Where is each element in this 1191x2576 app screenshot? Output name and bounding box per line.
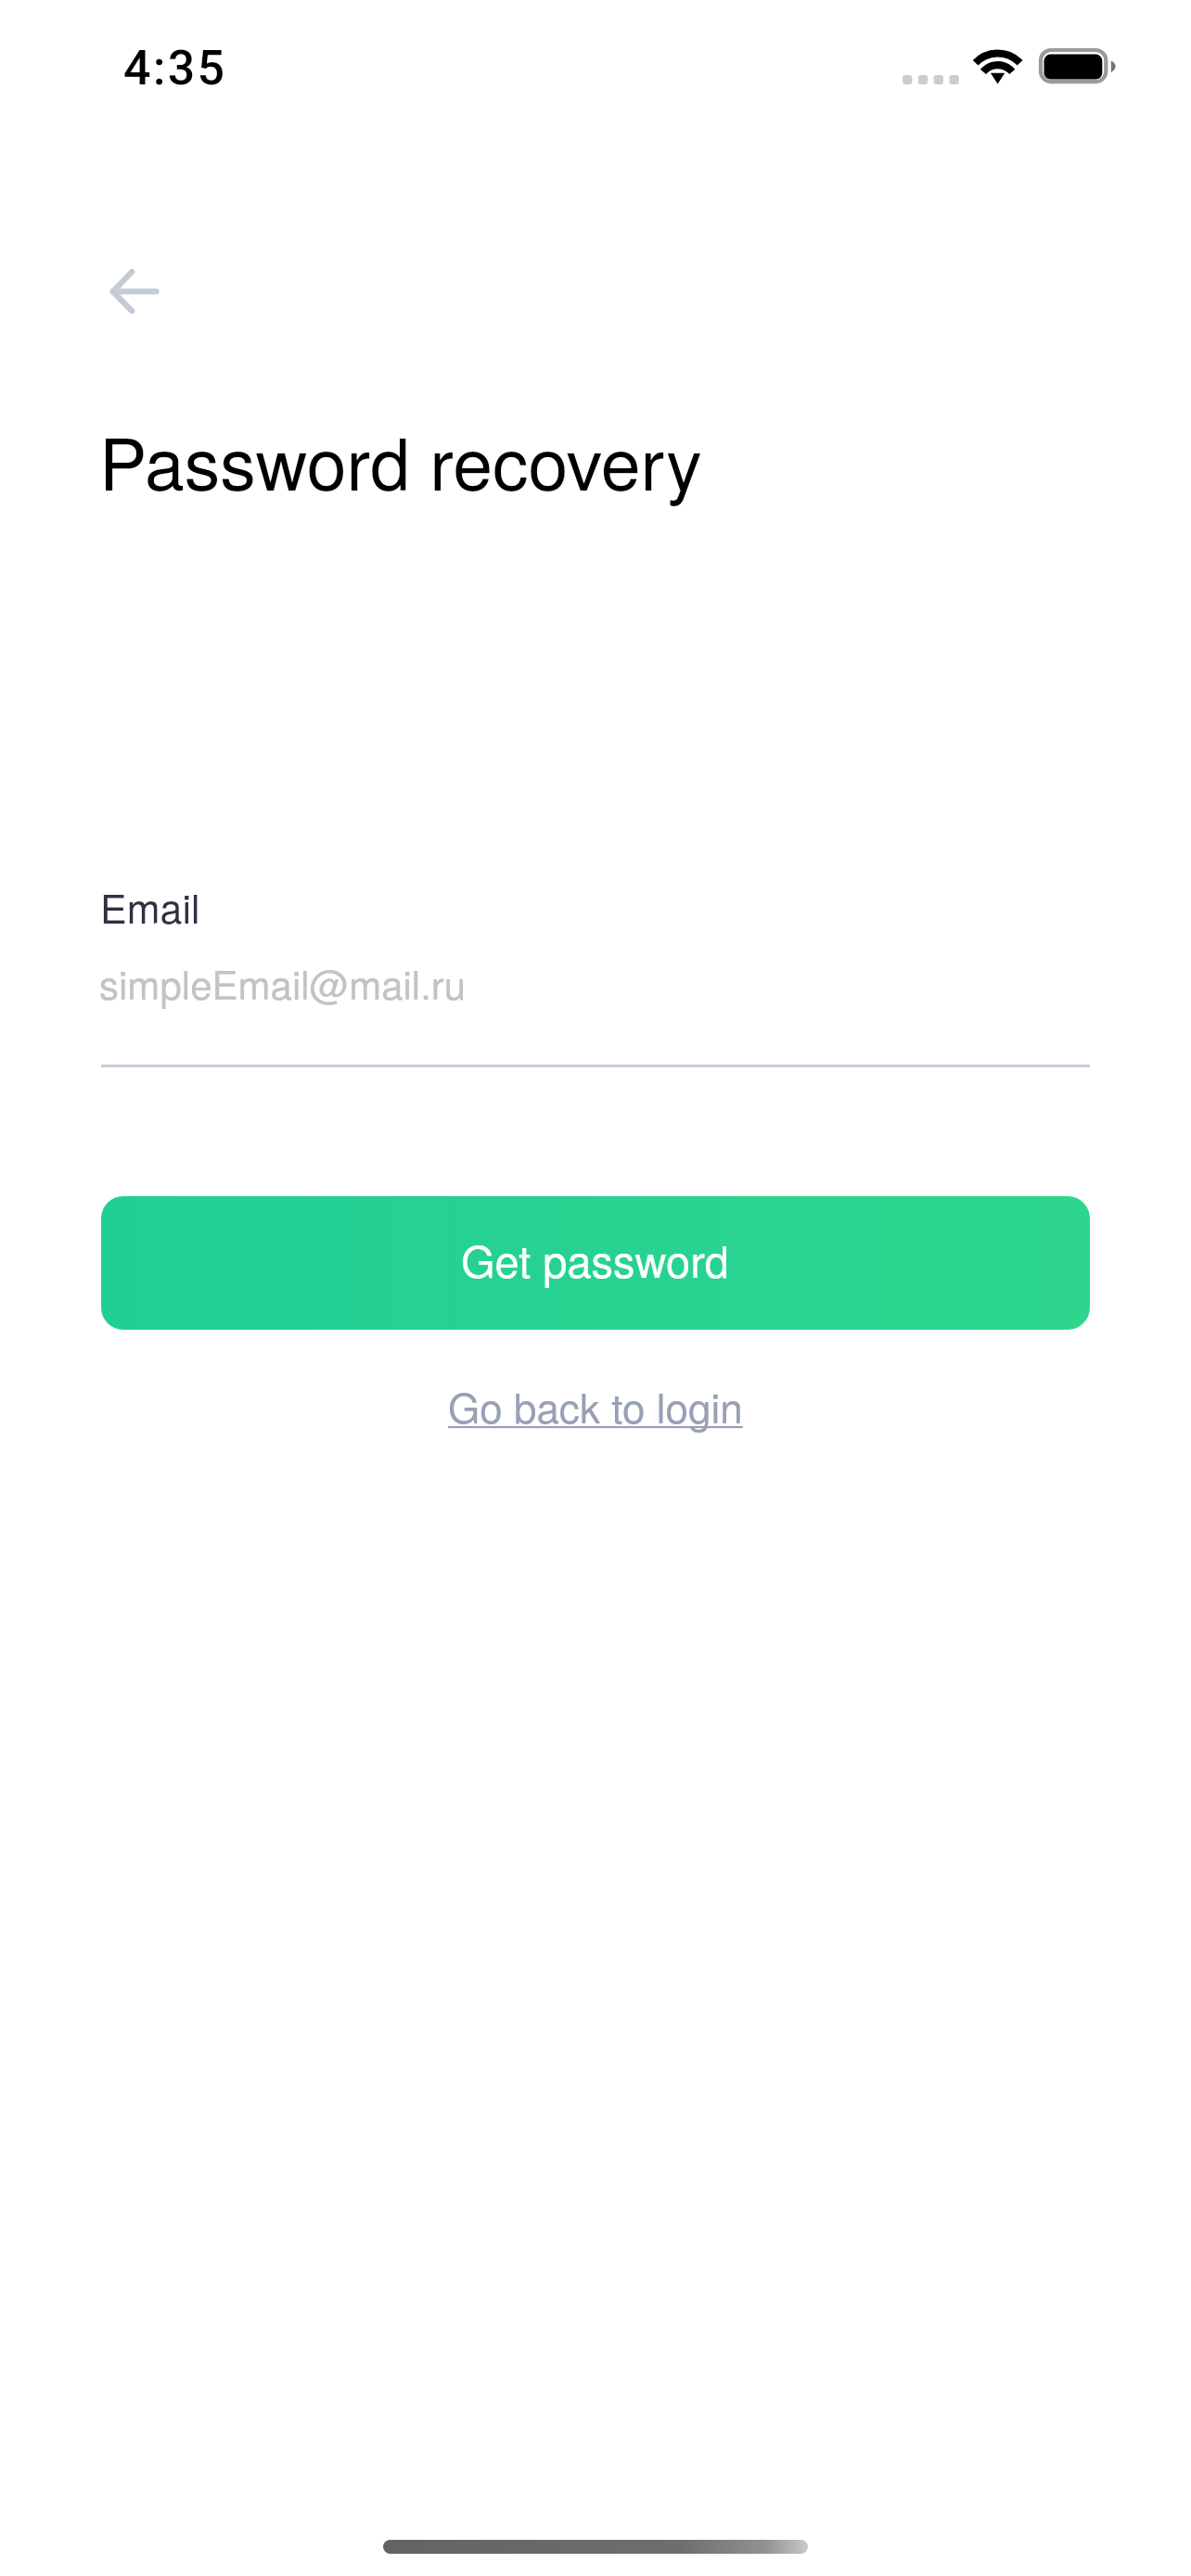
staticText: Go back to login [448, 1376, 743, 1435]
staticText: 4:35 [123, 40, 227, 96]
button[interactable]: Get password [101, 1196, 1090, 1330]
staticText: Get password [461, 1228, 730, 1290]
button[interactable]: Back [78, 260, 174, 323]
staticText: Email [100, 878, 200, 936]
staticText: simpleEmail@mail.ru [99, 955, 467, 1011]
staticText: Password recovery [99, 409, 702, 511]
button[interactable]: Go back to login [426, 1363, 765, 1447]
